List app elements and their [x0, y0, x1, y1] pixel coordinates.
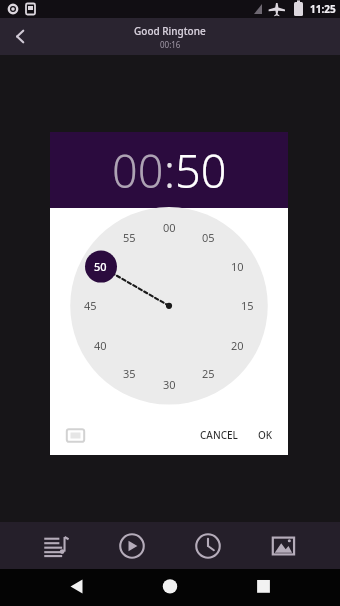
button[interactable]: Image — [246, 522, 322, 569]
staticText: 35 — [123, 366, 136, 381]
staticText: 55 — [123, 230, 136, 245]
staticText: 05 — [202, 230, 215, 245]
staticText: 50 — [175, 140, 227, 201]
button[interactable]: Timer — [170, 522, 246, 569]
button[interactable]: 50 — [175, 140, 227, 201]
button[interactable]: Switch to keyboard input — [60, 420, 90, 450]
staticText: 00 — [163, 220, 176, 235]
staticText: 25 — [202, 366, 215, 381]
button[interactable]: 00 — [112, 140, 164, 201]
staticText: 15 — [241, 298, 254, 313]
staticText: 40 — [94, 338, 107, 353]
button[interactable]: 45 — [84, 298, 97, 313]
staticText: Good Ringtone — [134, 24, 206, 38]
button[interactable]: 30 — [163, 377, 176, 392]
staticText: 00:16 — [160, 39, 181, 50]
staticText: 11:25 — [310, 2, 336, 16]
button[interactable]: 00 — [163, 220, 176, 235]
staticText: 20 — [231, 338, 244, 353]
button[interactable]: OK — [245, 421, 288, 449]
staticText: CANCEL — [200, 428, 238, 442]
staticText: 00 — [112, 140, 164, 201]
staticText: 45 — [84, 298, 97, 313]
staticText: 30 — [163, 377, 176, 392]
button[interactable]: 20 — [231, 338, 244, 353]
staticText: : — [164, 140, 175, 201]
staticText: 50 — [94, 259, 107, 274]
button[interactable]: CANCEL — [193, 421, 245, 449]
button[interactable]: 25 — [202, 366, 215, 381]
button[interactable]: Back — [0, 18, 40, 55]
button[interactable]: 50 — [94, 259, 107, 274]
button[interactable]: Playlist — [18, 522, 94, 569]
staticText: OK — [258, 428, 273, 442]
button[interactable]: 35 — [123, 366, 136, 381]
staticText: 10 — [231, 259, 244, 274]
button[interactable]: 40 — [94, 338, 107, 353]
button[interactable]: 05 — [202, 230, 215, 245]
button[interactable]: 55 — [123, 230, 136, 245]
button[interactable]: Play — [94, 522, 170, 569]
button[interactable]: 10 — [231, 259, 244, 274]
button[interactable]: 15 — [241, 298, 254, 313]
